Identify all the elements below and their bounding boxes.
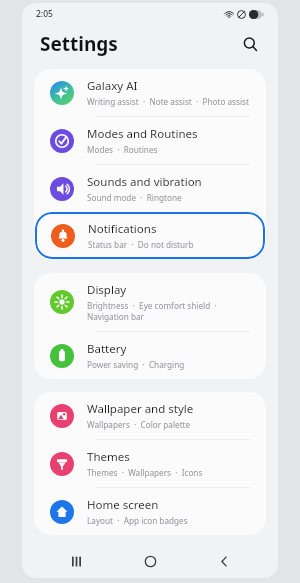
- button[interactable]: Search: [236, 30, 264, 58]
- button[interactable]: Galaxy AI: [34, 69, 266, 116]
- staticText: Layout · App icon badges: [87, 515, 188, 526]
- button[interactable]: Battery: [34, 332, 266, 379]
- button[interactable]: Modes and Routines: [34, 117, 266, 164]
- button[interactable]: Home screen: [34, 488, 266, 535]
- staticText: Sounds and vibration: [87, 174, 202, 190]
- staticText: Status bar · Do not disturb: [88, 239, 194, 250]
- button[interactable]: Display: [34, 273, 266, 331]
- staticText: Modes and Routines: [87, 126, 198, 142]
- button[interactable]: Themes: [34, 440, 266, 487]
- staticText: Writing assist · Note assist · Photo ass…: [87, 96, 249, 107]
- button[interactable]: Back: [204, 544, 244, 578]
- staticText: Home screen: [87, 497, 159, 513]
- staticText: Notifications: [88, 221, 157, 237]
- staticText: Battery: [87, 341, 127, 357]
- staticText: Wallpapers · Color palette: [87, 419, 191, 430]
- staticText: Display: [87, 282, 127, 298]
- staticText: Brightness · Eye comfort shield · Naviga…: [87, 300, 217, 322]
- button[interactable]: Recents: [56, 544, 96, 578]
- staticText: Modes · Routines: [87, 144, 158, 155]
- staticText: 2:05: [36, 8, 53, 20]
- button[interactable]: Sounds and vibration: [34, 165, 266, 212]
- button[interactable]: Home: [130, 544, 170, 578]
- staticText: Themes · Wallpapers · Icons: [87, 467, 203, 478]
- button[interactable]: Wallpaper and style: [34, 392, 266, 439]
- staticText: Themes: [87, 449, 130, 465]
- staticText: Power saving · Charging: [87, 359, 185, 370]
- staticText: Wallpaper and style: [87, 401, 194, 417]
- staticText: Sound mode · Ringtone: [87, 192, 182, 203]
- staticText: Galaxy AI: [87, 78, 138, 94]
- button[interactable]: Notifications: [35, 212, 265, 259]
- staticText: Settings: [40, 31, 118, 57]
